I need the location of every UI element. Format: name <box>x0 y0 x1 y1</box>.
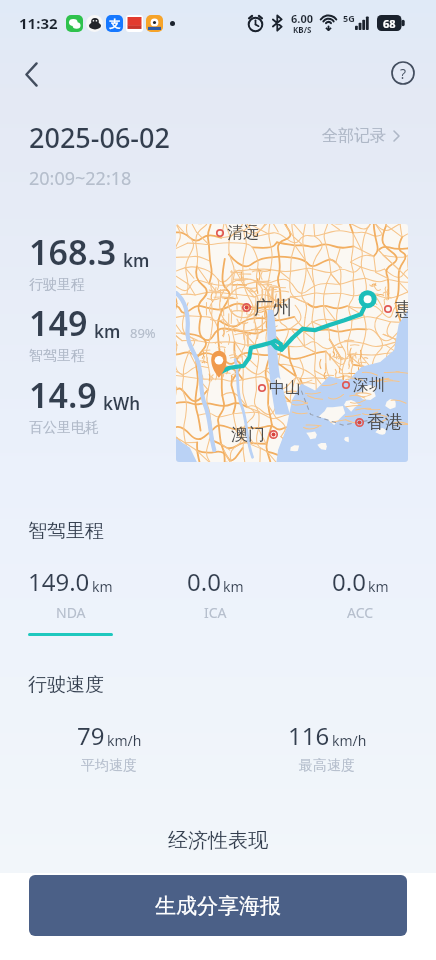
staticText: 智驾里程 <box>28 519 104 543</box>
staticText: 168.3 <box>29 229 117 275</box>
staticText: 深圳 <box>353 375 385 395</box>
staticText: 89% <box>130 324 156 342</box>
staticText: 2025-06-02 <box>29 119 170 156</box>
staticText: 智驾里程 <box>29 347 85 365</box>
staticText: 149.0 <box>28 565 90 598</box>
staticText: 20:09~22:18 <box>29 166 132 191</box>
staticText: 支 <box>109 17 120 31</box>
staticText: 116 <box>288 719 330 752</box>
staticText: ICA <box>204 603 227 622</box>
staticText: 68 <box>383 16 396 31</box>
staticText: NDA <box>56 603 86 622</box>
staticText: 0.0 <box>332 565 366 598</box>
staticText: 广州 <box>254 296 292 318</box>
button[interactable]: 经济性表现 <box>0 828 436 853</box>
staticText: 平均速度 <box>81 757 137 775</box>
staticText: 0.0 <box>187 565 221 598</box>
staticText: 全部记录 <box>322 126 386 146</box>
staticText: 惠 <box>395 298 408 320</box>
button[interactable]: 全部记录 <box>322 126 400 146</box>
staticText: 百公里电耗 <box>29 419 99 437</box>
staticText: 149 <box>29 300 88 346</box>
staticText: 澳门 <box>231 424 265 445</box>
staticText: km/h <box>332 731 367 750</box>
staticText: 5G <box>343 12 355 24</box>
staticText: ? <box>400 64 407 83</box>
staticText: km <box>92 577 113 596</box>
staticText: 最高速度 <box>299 757 355 775</box>
staticText: KB/S <box>293 24 312 35</box>
button[interactable]: Help <box>385 55 421 91</box>
staticText: kWh <box>103 392 141 415</box>
button[interactable]: 0.0 <box>143 565 288 636</box>
staticText: 6.00 <box>291 11 313 26</box>
staticText: 生成分享海报 <box>155 893 281 919</box>
staticText: km <box>123 249 150 272</box>
button[interactable]: 生成分享海报 <box>29 875 407 936</box>
staticText: km <box>94 320 121 343</box>
staticText: 79 <box>77 719 105 752</box>
button[interactable]: 149.0 <box>0 565 143 636</box>
staticText: km <box>368 577 389 596</box>
button[interactable]: 0.0 <box>288 565 433 636</box>
staticText: 中山 <box>269 378 301 398</box>
staticText: 11:32 <box>19 13 58 33</box>
staticText: km <box>223 577 244 596</box>
staticText: 经济性表现 <box>168 828 268 853</box>
staticText: 香港 <box>367 411 403 433</box>
staticText: 清远 <box>227 224 259 243</box>
button[interactable]: Back <box>11 54 51 94</box>
staticText: 行驶里程 <box>29 276 85 294</box>
staticText: ACC <box>347 603 374 622</box>
button[interactable]: Route map <box>176 224 408 462</box>
staticText: km/h <box>107 731 142 750</box>
staticText: 行驶速度 <box>28 673 104 697</box>
staticText: 14.9 <box>29 372 97 418</box>
